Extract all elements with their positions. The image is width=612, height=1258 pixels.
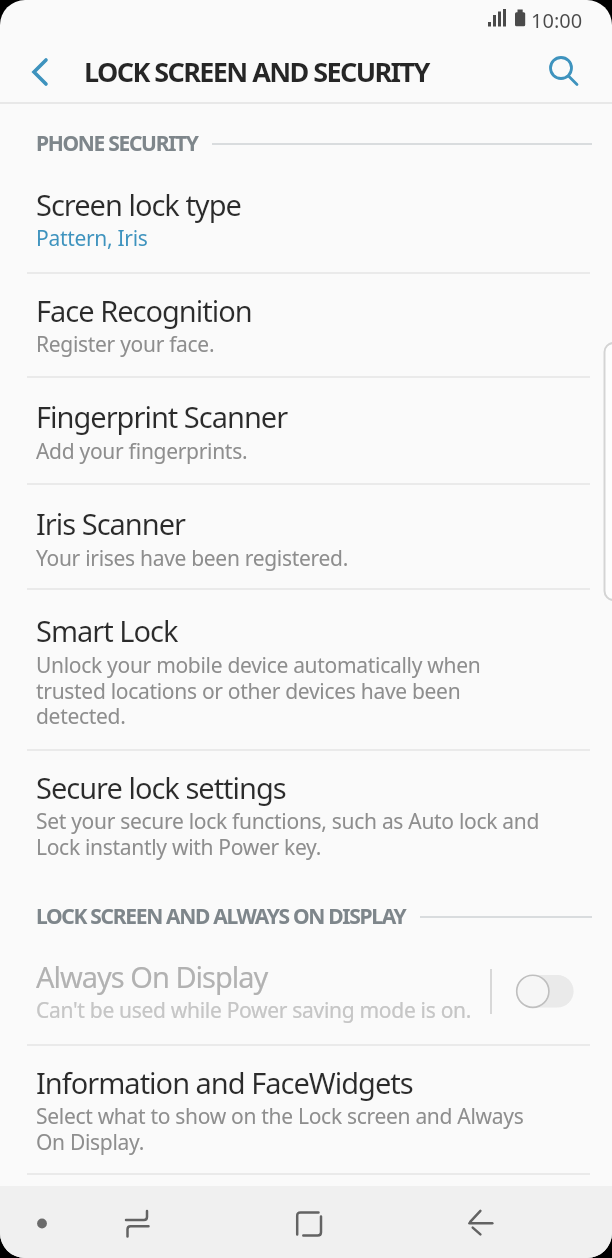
button[interactable]	[285, 1199, 333, 1247]
staticText: Iris Scanner	[36, 504, 186, 543]
staticText: Your irises have been registered.	[36, 544, 349, 573]
staticText: Smart Lock	[36, 611, 178, 650]
staticText: Face Recognition	[36, 291, 252, 330]
staticText: Register your face.	[36, 330, 215, 359]
staticText: Pattern, Iris	[36, 224, 148, 253]
staticText: 10:00	[531, 7, 583, 34]
staticText: LOCK SCREEN AND ALWAYS ON DISPLAY	[36, 902, 406, 931]
staticText: Set your secure lock functions, such as …	[36, 807, 540, 861]
button[interactable]: Always On Display	[0, 946, 612, 1044]
staticText: PHONE SECURITY	[36, 129, 198, 158]
staticText: Unlock your mobile device automatically …	[36, 651, 481, 730]
staticText: Secure lock settings	[36, 768, 286, 807]
button[interactable]: Information and FaceWidgets	[0, 1045, 612, 1173]
button[interactable]	[113, 1199, 161, 1247]
button[interactable]: Iris Scanner	[0, 484, 612, 587]
staticText: Add your fingerprints.	[36, 437, 248, 466]
staticText: Fingerprint Scanner	[36, 397, 288, 436]
button[interactable]	[540, 48, 588, 96]
button[interactable]: Smart Lock	[0, 589, 612, 748]
button[interactable]	[22, 1203, 62, 1243]
staticText: Screen lock type	[36, 185, 241, 224]
button[interactable]: Face Recognition	[0, 273, 612, 375]
staticText: Information and FaceWidgets	[36, 1063, 413, 1102]
button[interactable]	[508, 967, 582, 1016]
button[interactable]: Secure lock settings	[0, 750, 612, 880]
staticText: Always On Display	[36, 957, 268, 996]
button[interactable]: Screen lock type	[0, 146, 612, 272]
button[interactable]: Fingerprint Scanner	[0, 377, 612, 483]
staticText: LOCK SCREEN AND SECURITY	[84, 53, 429, 90]
button[interactable]	[456, 1199, 504, 1247]
staticText: Select what to show on the Lock screen a…	[36, 1102, 524, 1156]
staticText: Can't be used while Power saving mode is…	[36, 996, 472, 1025]
button[interactable]	[22, 56, 58, 88]
